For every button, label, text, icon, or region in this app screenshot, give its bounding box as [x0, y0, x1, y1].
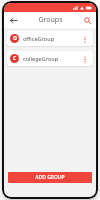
- staticText: Groups: [38, 15, 63, 25]
- button[interactable]: O: [7, 31, 93, 46]
- staticText: O: [13, 35, 17, 42]
- button[interactable]: ADD GROUP: [8, 172, 92, 183]
- staticText: ADD GROUP: [35, 174, 65, 181]
- button[interactable]: Back: [7, 14, 19, 26]
- staticText: collegeGroup: [23, 55, 59, 62]
- button[interactable]: C: [7, 51, 93, 66]
- button[interactable]: Search: [81, 14, 93, 26]
- staticText: C: [13, 55, 17, 62]
- button[interactable]: More options for collegeGroup: [80, 54, 90, 64]
- staticText: officeGroup: [23, 35, 55, 42]
- button[interactable]: More options for officeGroup: [80, 34, 90, 44]
